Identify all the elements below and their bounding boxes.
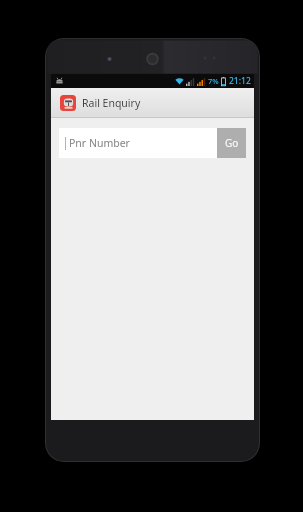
staticText: Pnr Number bbox=[69, 136, 130, 150]
other: Rail Enquiry app icon bbox=[60, 95, 76, 111]
staticText: 7% bbox=[208, 76, 219, 86]
button[interactable]: Go bbox=[217, 128, 246, 158]
staticText: Rail Enquiry bbox=[82, 96, 141, 110]
button[interactable]: Pnr Number bbox=[59, 128, 217, 158]
staticText: 21:12 bbox=[229, 75, 251, 87]
staticText: Go bbox=[225, 136, 239, 150]
